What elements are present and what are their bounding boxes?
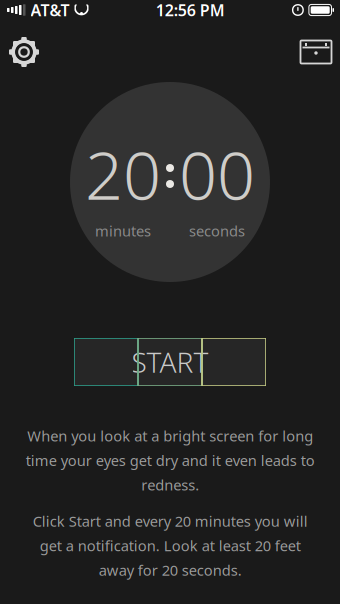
staticText: seconds bbox=[189, 221, 245, 240]
staticText: 20 bbox=[85, 129, 161, 218]
staticText: AT&T bbox=[30, 0, 69, 21]
staticText: When you look at a bright screen for lon… bbox=[25, 426, 314, 494]
staticText: 00 bbox=[179, 129, 255, 218]
button[interactable]: START bbox=[74, 338, 266, 386]
button[interactable]: Settings bbox=[0, 30, 48, 74]
staticText: minutes bbox=[95, 221, 151, 240]
staticText: 12:56 PM bbox=[156, 0, 225, 21]
button[interactable]: Mail bbox=[292, 30, 340, 74]
staticText: Click Start and every 20 minutes you wil… bbox=[32, 511, 307, 580]
staticText: START bbox=[131, 343, 208, 381]
